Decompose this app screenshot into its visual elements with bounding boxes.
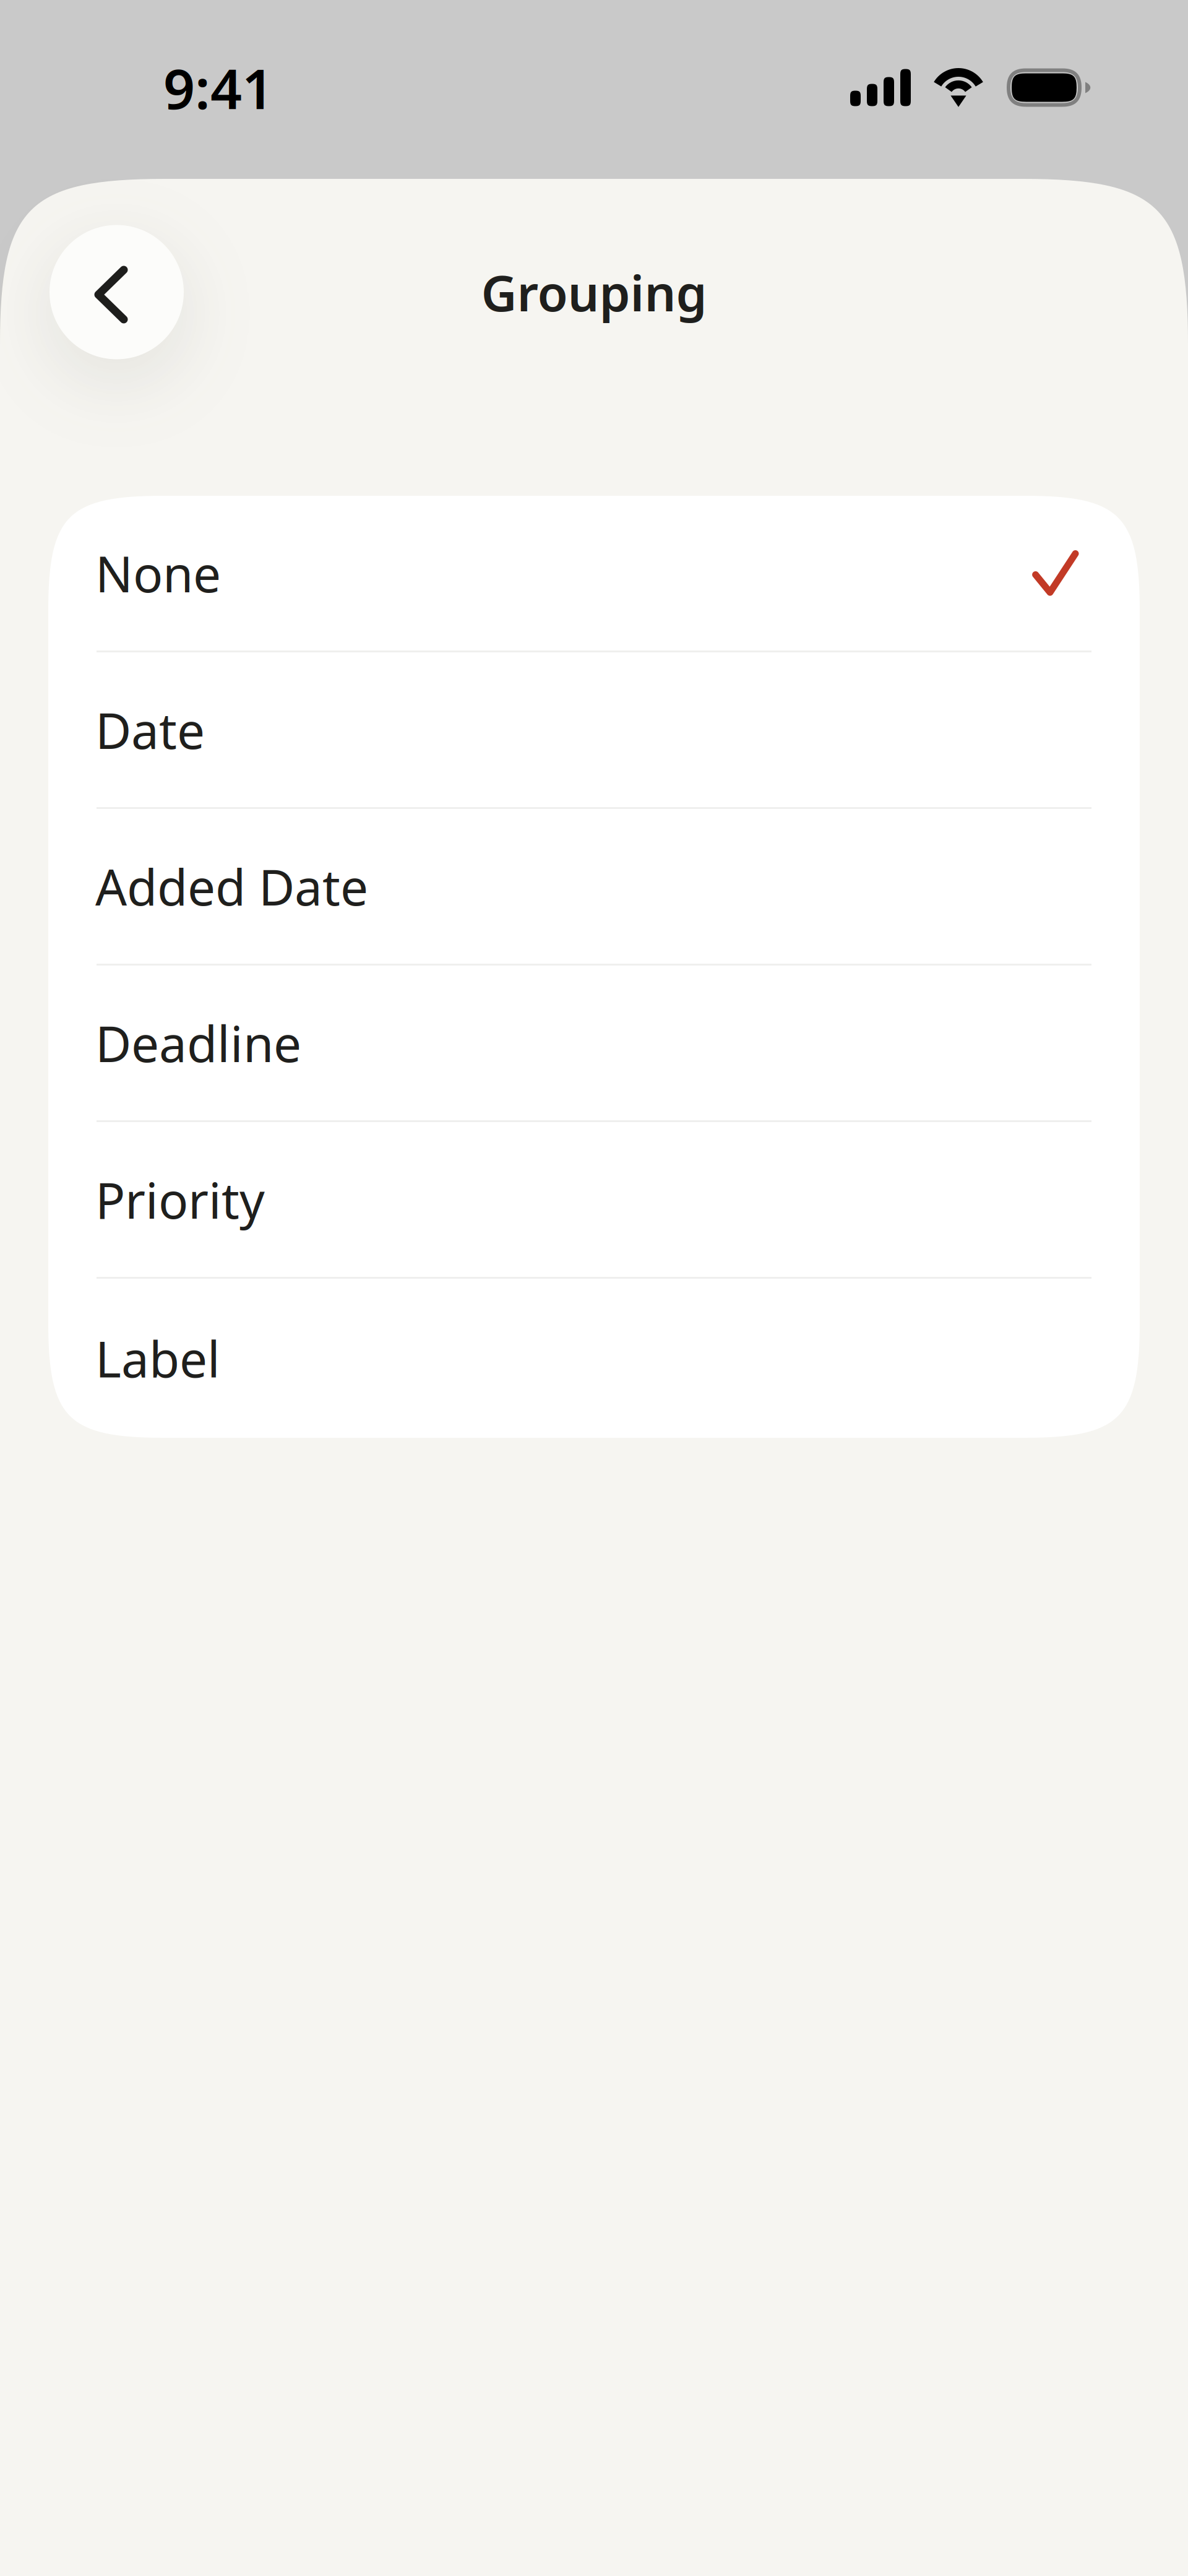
button[interactable]: Date — [48, 652, 1140, 809]
button[interactable]: Back — [49, 225, 184, 359]
button[interactable]: None — [48, 496, 1140, 652]
staticText: Priority — [95, 1167, 265, 1232]
staticText: Added Date — [95, 853, 368, 919]
staticText: Date — [95, 697, 205, 763]
staticText: Label — [95, 1325, 220, 1391]
button[interactable]: Label — [48, 1279, 1140, 1438]
staticText: None — [95, 540, 221, 606]
button[interactable]: Added Date — [48, 809, 1140, 966]
button[interactable]: Deadline — [48, 966, 1140, 1122]
staticText: Grouping — [481, 259, 707, 325]
button[interactable]: Priority — [48, 1122, 1140, 1279]
staticText: Deadline — [95, 1010, 301, 1076]
staticText: 9:41 — [163, 51, 273, 124]
